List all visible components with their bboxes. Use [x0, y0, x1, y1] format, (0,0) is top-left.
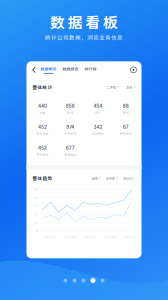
staticText: 342 — [93, 124, 102, 130]
staticText: 974 — [66, 124, 74, 130]
button[interactable]: Page — [72, 278, 76, 282]
staticText: 40 — [34, 204, 38, 208]
staticText: 本周 — [126, 85, 132, 90]
staticText: 统计公司数据，浏览业务信息 — [45, 33, 123, 41]
button[interactable]: 本周 — [126, 85, 135, 90]
button[interactable]: Back — [29, 64, 38, 75]
button[interactable]: 全公司 — [123, 176, 135, 181]
staticText: 全公司 — [123, 176, 132, 181]
staticText: 2016-09 — [124, 236, 136, 239]
staticText: 2016-05 — [44, 236, 56, 239]
button[interactable]: Page — [63, 278, 67, 282]
button[interactable]: Page — [81, 278, 85, 282]
button[interactable]: 业绩 — [91, 176, 101, 181]
staticText: 2016-06 — [64, 236, 76, 239]
staticText: 677 — [66, 145, 75, 151]
button[interactable]: Page 4, current — [90, 278, 95, 283]
staticText: 440 — [38, 103, 47, 109]
staticText: 67 — [123, 124, 129, 130]
staticText: 据 — [68, 11, 83, 32]
staticText: 新增房源 — [92, 131, 104, 135]
staticText: 近半年 — [106, 176, 115, 181]
button[interactable]: Page — [100, 278, 104, 282]
button[interactable]: 排行榜 — [84, 66, 96, 74]
button[interactable]: 二手房 — [107, 85, 119, 90]
staticText: 454 — [93, 103, 102, 109]
staticText: 60 — [34, 188, 38, 191]
button[interactable]: 近半年 — [106, 176, 118, 181]
staticText: 新增 — [67, 110, 73, 114]
staticText: 50 — [34, 196, 38, 199]
button[interactable]: Settings — [128, 66, 138, 74]
staticText: 数据报表 — [62, 66, 78, 72]
staticText: 带看 — [39, 110, 45, 114]
staticText: 整体趋势 — [32, 175, 52, 182]
staticText: 成交 — [95, 110, 101, 114]
staticText: 452 — [38, 145, 47, 151]
staticText: 新房跟进 — [36, 152, 48, 156]
staticText: 在售房源 — [64, 131, 76, 135]
staticText: 30 — [34, 213, 38, 216]
staticText: 数据概览 — [40, 66, 56, 72]
staticText: 新增 — [123, 110, 129, 114]
staticText: 452 — [38, 124, 47, 130]
staticText: 整体统计 — [32, 84, 52, 91]
staticText: 二手房 — [107, 85, 116, 90]
staticText: 业绩 — [91, 176, 97, 181]
button[interactable]: 数据报表 — [62, 66, 78, 74]
staticText: 856 — [66, 103, 75, 109]
staticText: 板 — [103, 11, 118, 32]
staticText: 客源跟进 — [64, 152, 76, 156]
staticText: 10 — [35, 230, 38, 233]
staticText: 新房带看 — [36, 131, 48, 135]
staticText: 排行榜 — [84, 66, 96, 72]
staticText: 88 — [123, 103, 129, 109]
staticText: 看 — [85, 11, 100, 32]
button[interactable]: 数据概览 — [40, 66, 56, 74]
staticText: 2016-07 — [84, 236, 96, 239]
staticText: 新增客源 — [120, 131, 132, 135]
staticText: 数 — [50, 11, 65, 32]
staticText: 20 — [34, 221, 38, 224]
staticText: 2016-08 — [104, 236, 116, 239]
